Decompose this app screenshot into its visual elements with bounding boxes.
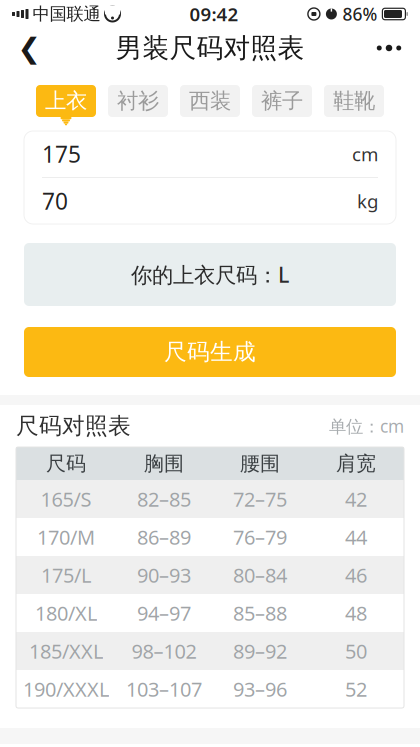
staticText: 94–97 xyxy=(137,600,191,626)
staticText: 西装 xyxy=(189,88,231,114)
staticText: 70 xyxy=(42,186,68,216)
staticText: 48 xyxy=(345,600,367,626)
staticText: 腰围 xyxy=(240,451,280,476)
staticText: 72–75 xyxy=(233,486,287,512)
staticText: 98–102 xyxy=(131,638,196,664)
staticText: 衬衫 xyxy=(117,88,159,114)
button[interactable]: More options xyxy=(364,25,414,71)
staticText: 86–89 xyxy=(137,524,191,550)
staticText: kg xyxy=(357,189,378,213)
staticText: 85–88 xyxy=(233,600,287,626)
staticText: 93–96 xyxy=(233,676,287,702)
staticText: 170/M xyxy=(37,524,95,550)
staticText: 103–107 xyxy=(126,676,202,702)
button[interactable]: 衬衫 xyxy=(108,85,168,125)
staticText: 52 xyxy=(345,676,367,702)
button[interactable]: 上衣 xyxy=(36,85,96,125)
button[interactable]: 裤子 xyxy=(252,85,312,125)
staticText: 尺码生成 xyxy=(164,338,256,366)
staticText: 尺码对照表 xyxy=(16,412,131,440)
staticText: 肩宽 xyxy=(336,451,376,476)
staticText: 90–93 xyxy=(137,562,191,588)
staticText: 50 xyxy=(345,638,367,664)
staticText: 鞋靴 xyxy=(333,88,375,114)
staticText: 尺码 xyxy=(46,451,86,476)
staticText: 单位：cm xyxy=(329,414,404,437)
staticText: 42 xyxy=(345,486,367,512)
staticText: 82–85 xyxy=(137,486,191,512)
staticText: 86% xyxy=(342,2,377,25)
button[interactable]: 西装 xyxy=(180,85,240,125)
staticText: 男装尺码对照表 xyxy=(115,32,304,64)
staticText: 80–84 xyxy=(233,562,287,588)
staticText: 胸围 xyxy=(144,451,184,476)
staticText: 裤子 xyxy=(261,88,303,114)
staticText: 89–92 xyxy=(233,638,287,664)
button[interactable]: 尺码生成 xyxy=(24,327,396,377)
staticText: 44 xyxy=(345,524,367,550)
staticText: 76–79 xyxy=(233,524,287,550)
staticText: 165/S xyxy=(40,486,91,512)
staticText: 175/L xyxy=(41,562,91,588)
staticText: 上衣 xyxy=(45,88,87,114)
staticText: 175 xyxy=(42,139,81,169)
staticText: 185/XXL xyxy=(29,638,103,664)
staticText: 你的上衣尺码：L xyxy=(131,260,289,289)
staticText: cm xyxy=(352,142,378,166)
button[interactable]: 鞋靴 xyxy=(324,85,384,125)
staticText: 190/XXXL xyxy=(23,676,109,702)
staticText: ❮ xyxy=(17,32,40,64)
staticText: 中国联通 xyxy=(32,3,100,25)
staticText: 46 xyxy=(345,562,367,588)
staticText: 09:42 xyxy=(189,2,238,26)
staticText: 180/XL xyxy=(35,600,97,626)
button[interactable]: Back xyxy=(6,25,52,71)
